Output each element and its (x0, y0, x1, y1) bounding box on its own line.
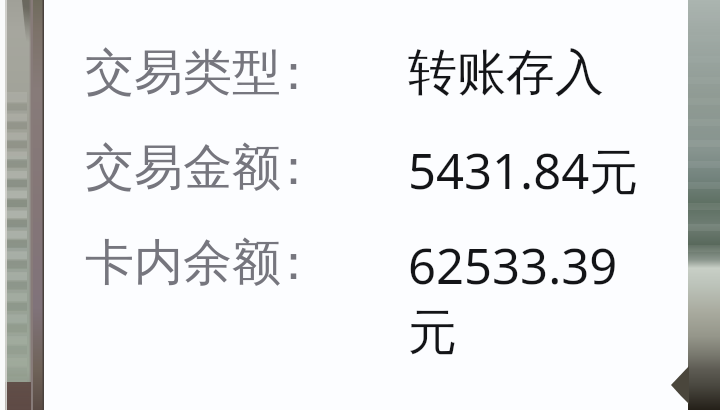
staticText: 交易类型 (85, 42, 281, 104)
staticText: 交易金额 (85, 137, 281, 199)
staticText: 62533.39元 (408, 232, 640, 364)
staticText: 转账存入 (408, 42, 640, 104)
staticText: ： (269, 42, 318, 104)
staticText: 5431.84元 (408, 137, 640, 204)
button[interactable]: 交易类型 (44, 0, 688, 410)
staticText: ： (269, 137, 318, 199)
staticText: 卡内余额 (85, 232, 281, 294)
staticText: ： (269, 232, 318, 294)
